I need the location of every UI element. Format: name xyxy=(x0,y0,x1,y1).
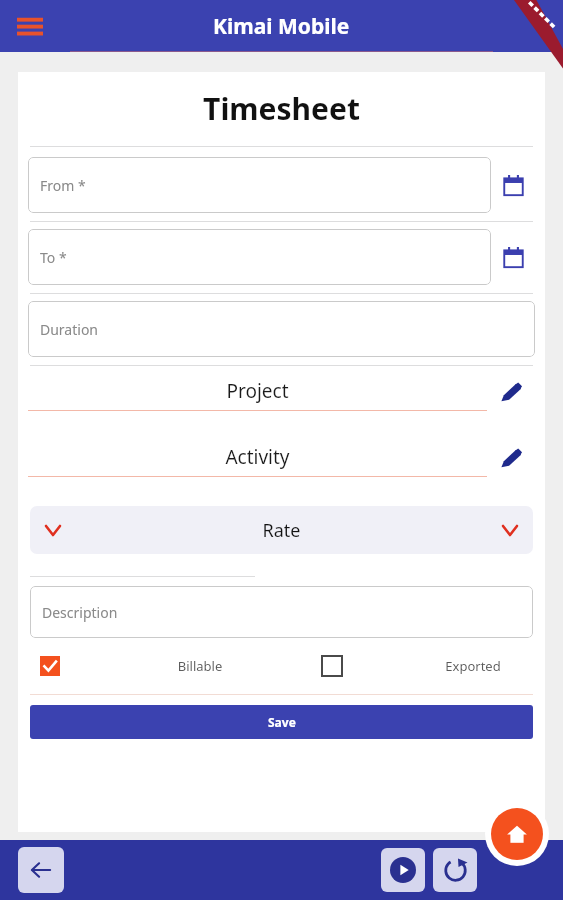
staticText: Timesheet xyxy=(18,88,545,129)
button[interactable]: Back xyxy=(18,847,64,893)
button[interactable]: Pick date xyxy=(491,157,535,213)
staticText: Save xyxy=(268,714,296,730)
staticText: Kimai Mobile xyxy=(213,12,350,41)
button[interactable]: Activity xyxy=(28,440,535,480)
staticText: Activity xyxy=(28,444,487,470)
staticText: Duration xyxy=(40,320,99,339)
button[interactable]: Pick date xyxy=(491,229,535,285)
button[interactable]: From * xyxy=(28,157,491,213)
button[interactable]: To * xyxy=(28,229,491,285)
button[interactable]: Home xyxy=(491,808,543,860)
button[interactable]: Duration xyxy=(28,301,535,357)
other: Edit Project xyxy=(487,374,535,414)
staticText: From * xyxy=(40,176,86,195)
staticText: Description xyxy=(42,603,118,622)
button[interactable]: Description xyxy=(30,586,533,638)
button[interactable]: Menu xyxy=(10,6,50,46)
button[interactable]: Refresh xyxy=(433,848,477,892)
button[interactable] xyxy=(250,648,413,684)
staticText: To * xyxy=(40,248,67,267)
staticText: Exported xyxy=(413,657,533,675)
other: Edit Activity xyxy=(487,440,535,480)
button[interactable]: Rate xyxy=(30,506,533,554)
button[interactable] xyxy=(30,648,150,684)
staticText: Rate xyxy=(76,518,487,543)
button[interactable]: Save xyxy=(30,705,533,739)
staticText: Billable xyxy=(150,657,250,675)
button[interactable]: Project xyxy=(28,374,535,414)
staticText: Project xyxy=(28,378,487,404)
button[interactable]: Start xyxy=(381,848,425,892)
